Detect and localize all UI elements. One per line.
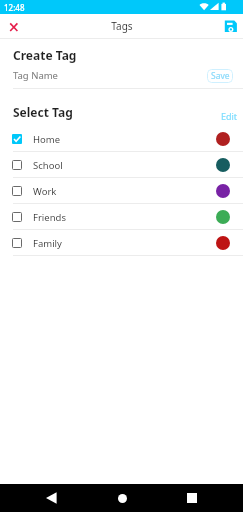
staticText: Save [211, 70, 230, 82]
staticText: Tags [111, 19, 133, 33]
staticText: Select Tag [13, 104, 73, 120]
staticText: Work [33, 185, 57, 198]
button[interactable]: Save [207, 69, 233, 83]
button[interactable]: Close [4, 16, 24, 36]
staticText: Family [33, 237, 62, 250]
staticText: 12:48 [4, 2, 25, 13]
staticText: Tag Name [13, 69, 58, 82]
button[interactable]: Edit [217, 106, 242, 126]
button[interactable]: Home [108, 484, 136, 512]
button[interactable]: Work [0, 178, 243, 204]
button[interactable]: Tag Name [0, 64, 243, 88]
button[interactable]: Friends [0, 204, 243, 230]
button[interactable]: Family [0, 230, 243, 256]
button[interactable]: Back [37, 484, 65, 512]
button[interactable]: Recent apps [178, 484, 206, 512]
staticText: School [33, 159, 63, 172]
button[interactable]: School [0, 152, 243, 178]
staticText: Create Tag [13, 47, 77, 63]
staticText: Friends [33, 211, 66, 224]
button[interactable]: Home [0, 126, 243, 152]
button[interactable]: Save [220, 16, 240, 36]
staticText: Home [33, 133, 61, 146]
staticText: Edit [221, 110, 238, 122]
